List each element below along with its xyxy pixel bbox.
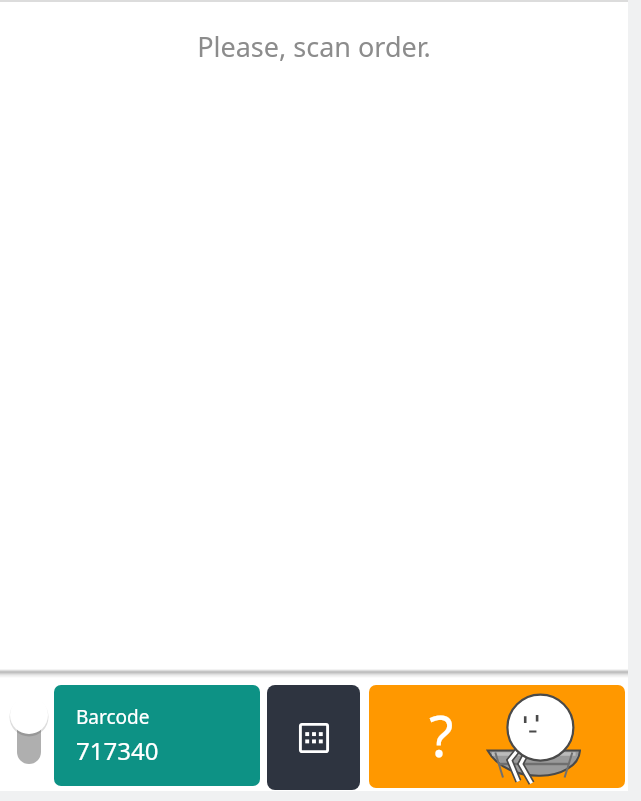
button[interactable]: Toggle scanner mode — [8, 688, 50, 772]
staticText: Barcode — [76, 704, 150, 730]
staticText: ? — [429, 697, 454, 773]
staticText: Please, scan order. — [197, 28, 431, 65]
button[interactable]: Help — [369, 685, 625, 788]
staticText: 717340 — [76, 734, 159, 767]
button[interactable]: Barcode — [54, 685, 260, 786]
button[interactable]: Keypad — [267, 685, 360, 790]
